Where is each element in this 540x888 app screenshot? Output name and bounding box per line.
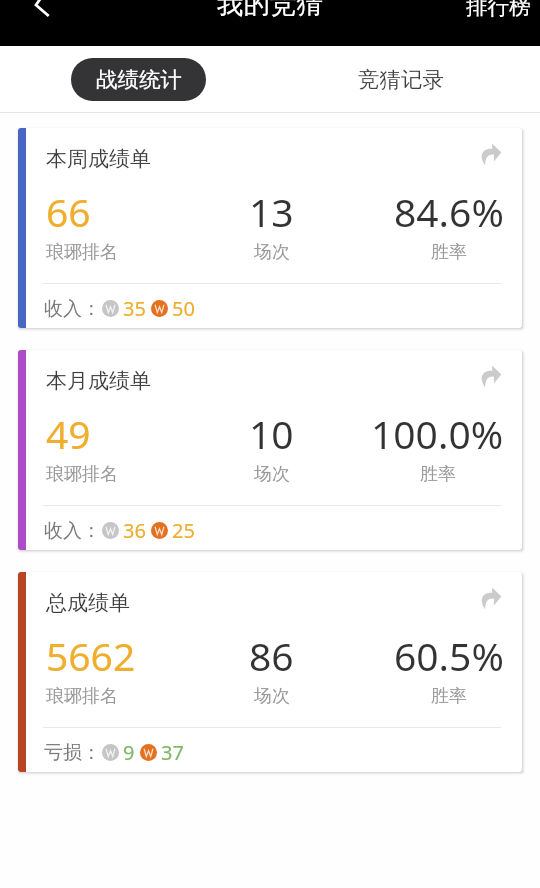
- button[interactable]: Share: [475, 139, 507, 171]
- staticText: 49: [46, 407, 91, 460]
- button[interactable]: Share: [475, 583, 507, 615]
- button[interactable]: Share: [475, 361, 507, 393]
- staticText: 战绩统计: [96, 66, 182, 93]
- button[interactable]: 本周成绩单: [18, 128, 522, 328]
- staticText: 35: [123, 295, 146, 322]
- staticText: 60.5%: [394, 629, 504, 682]
- staticText: 66: [46, 185, 91, 238]
- staticText: 场次: [254, 685, 290, 708]
- staticText: 37: [161, 739, 184, 766]
- staticText: 86: [249, 629, 294, 682]
- staticText: 10: [249, 407, 294, 460]
- staticText: 胜率: [420, 463, 456, 486]
- staticText: 总成绩单: [46, 590, 130, 616]
- staticText: 5662: [46, 629, 136, 682]
- staticText: 84.6%: [394, 185, 504, 238]
- button[interactable]: 竞猜记录: [339, 58, 462, 101]
- staticText: 琅琊排名: [46, 241, 118, 264]
- staticText: 本周成绩单: [46, 146, 151, 172]
- staticText: 收入：: [44, 519, 101, 543]
- button[interactable]: 本月成绩单: [18, 350, 522, 550]
- staticText: 竞猜记录: [358, 66, 444, 93]
- staticText: 琅琊排名: [46, 463, 118, 486]
- button[interactable]: 排行榜: [456, 0, 540, 24]
- staticText: 琅琊排名: [46, 685, 118, 708]
- staticText: 本月成绩单: [46, 368, 151, 394]
- staticText: 收入：: [44, 297, 101, 321]
- staticText: 我的竞猜: [217, 0, 323, 20]
- staticText: 25: [172, 517, 195, 544]
- staticText: 100.0%: [371, 407, 504, 460]
- staticText: 排行榜: [466, 0, 531, 20]
- button[interactable]: 战绩统计: [71, 58, 206, 101]
- staticText: 场次: [254, 463, 290, 486]
- staticText: 13: [249, 185, 294, 238]
- staticText: 胜率: [431, 241, 467, 264]
- staticText: 9: [123, 739, 135, 766]
- staticText: 亏损：: [44, 741, 101, 765]
- staticText: 36: [123, 517, 146, 544]
- staticText: 50: [172, 295, 195, 322]
- button[interactable]: 总成绩单: [18, 572, 522, 772]
- button[interactable]: Back: [19, 0, 65, 28]
- staticText: 场次: [254, 241, 290, 264]
- staticText: 胜率: [431, 685, 467, 708]
